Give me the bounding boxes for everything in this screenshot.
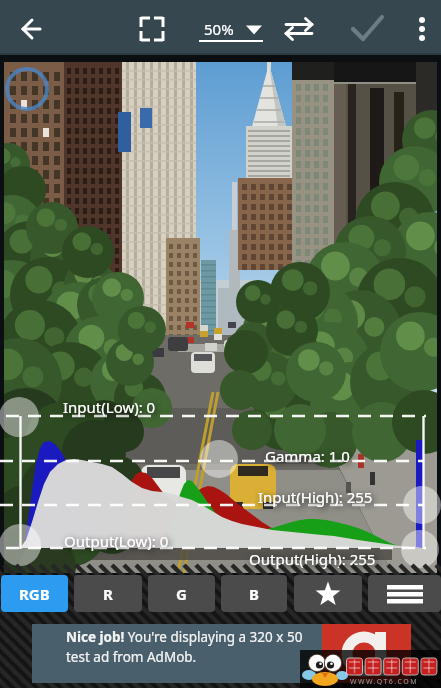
staticText: Output(High): 255 xyxy=(249,549,376,569)
staticText: Gamma: 1.0 xyxy=(265,446,350,466)
button[interactable] xyxy=(294,575,362,612)
staticText: Nice job! You're displaying a 320 x 50 t… xyxy=(66,628,303,666)
staticText: Input(Low): 0 xyxy=(63,397,156,417)
button[interactable] xyxy=(10,9,50,49)
staticText: RGB xyxy=(19,584,50,604)
button[interactable] xyxy=(347,7,391,51)
button[interactable]: 50% xyxy=(196,6,266,50)
button[interactable] xyxy=(279,9,319,49)
button[interactable] xyxy=(132,9,172,49)
button[interactable] xyxy=(402,7,441,51)
staticText: G xyxy=(176,584,187,604)
staticText: Input(High): 255 xyxy=(258,487,373,507)
staticText: 50% xyxy=(204,19,234,39)
staticText: WWW.QT6.COM xyxy=(350,677,418,687)
button[interactable] xyxy=(368,575,441,612)
staticText: B xyxy=(249,584,259,604)
button[interactable]: RGB xyxy=(1,575,68,612)
button[interactable]: G xyxy=(148,575,215,612)
button[interactable]: Nice job! You're displaying a 320 x 50 t… xyxy=(32,624,411,683)
button[interactable]: R xyxy=(74,575,142,612)
button[interactable]: B xyxy=(221,575,287,612)
staticText: R xyxy=(103,584,113,604)
staticText: Output(Low): 0 xyxy=(64,531,169,551)
